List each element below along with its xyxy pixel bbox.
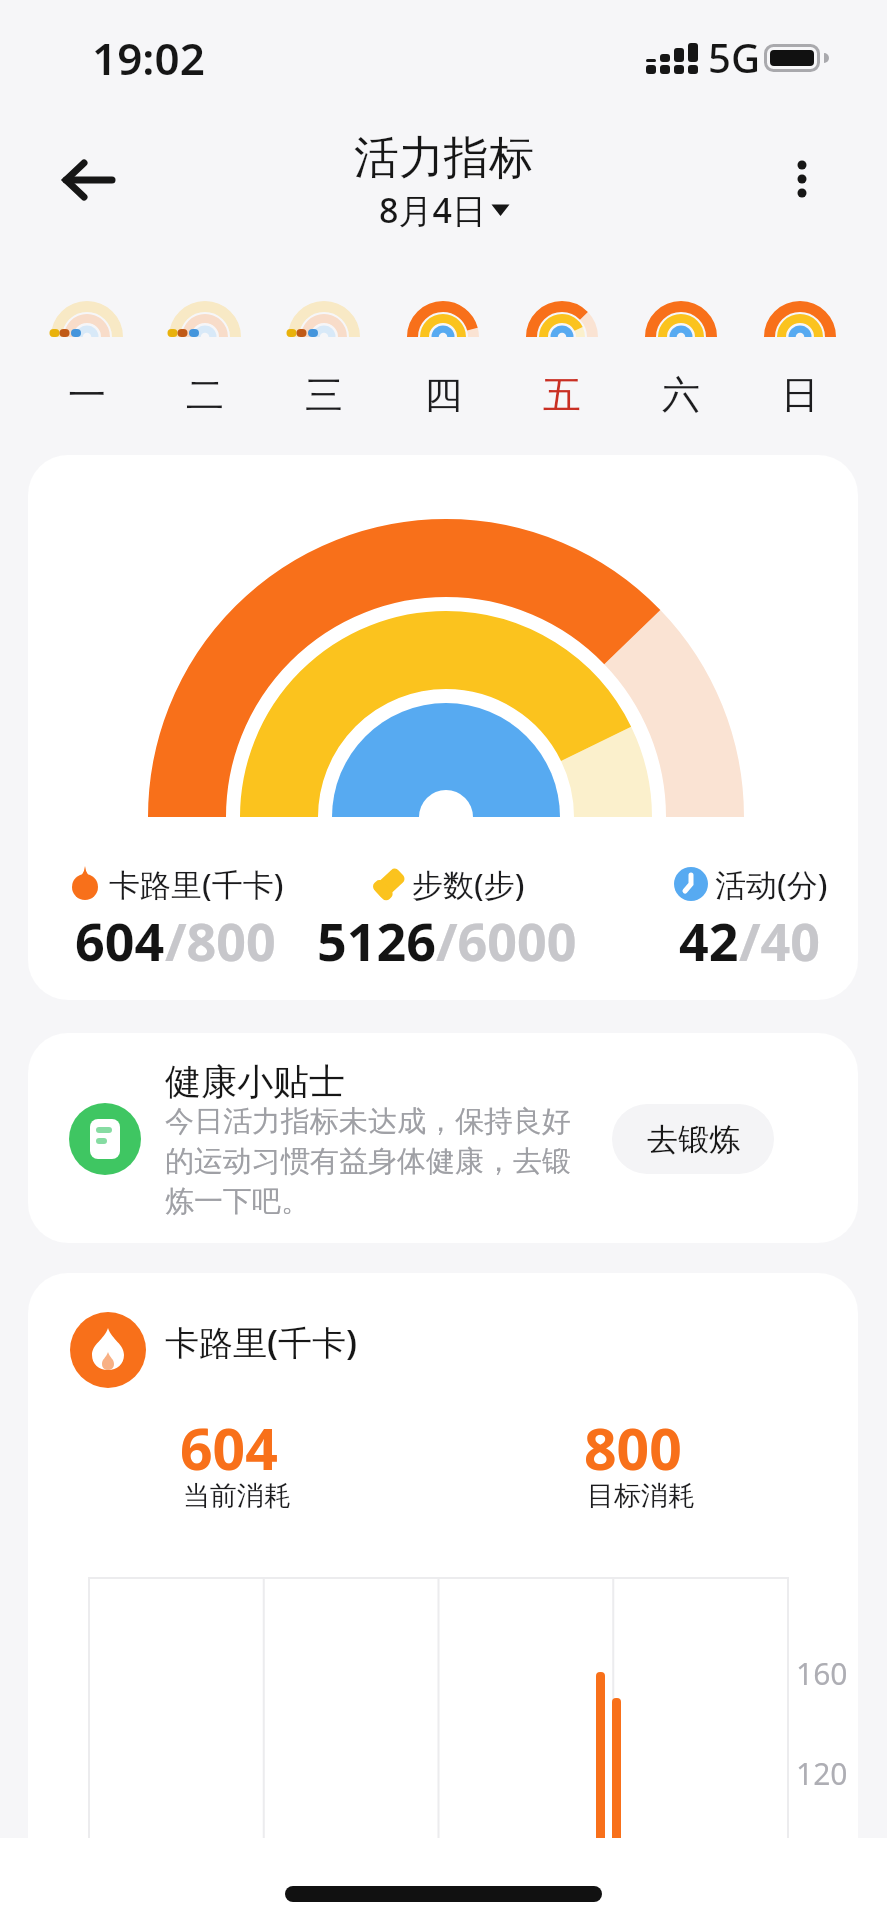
button[interactable]: 五: [502, 296, 621, 419]
button[interactable]: 二: [146, 296, 264, 419]
button[interactable]: 一: [28, 296, 146, 419]
button[interactable]: 活力指标: [354, 130, 534, 233]
staticText: 一: [68, 371, 106, 419]
staticText: 活动(分): [715, 863, 828, 905]
staticText: 活力指标: [354, 130, 534, 187]
staticText: 去锻炼: [647, 1120, 740, 1159]
staticText: 日: [781, 371, 819, 419]
staticText: 卡路里(千卡): [109, 863, 284, 905]
staticText: 604: [75, 905, 165, 976]
staticText: 六: [662, 371, 700, 419]
staticText: 五: [543, 371, 581, 419]
staticText: 604: [180, 1409, 278, 1487]
button[interactable]: 四: [383, 296, 502, 419]
button[interactable]: [50, 148, 122, 212]
staticText: 步数(步): [412, 863, 525, 905]
staticText: /40: [739, 905, 821, 976]
button[interactable]: 三: [264, 296, 383, 419]
staticText: /6000: [436, 905, 577, 976]
button[interactable]: 去锻炼: [612, 1104, 774, 1174]
staticText: 160: [796, 1653, 848, 1694]
staticText: 今日活力指标未达成，保持良好 的运动习惯有益身体健康，去锻 炼一下吧。: [165, 1103, 571, 1219]
staticText: 健康小贴士: [165, 1059, 345, 1104]
button[interactable]: [770, 146, 834, 210]
staticText: 四: [424, 371, 462, 419]
staticText: 120: [796, 1753, 848, 1794]
staticText: 卡路里(千卡): [165, 1319, 358, 1365]
staticText: 42: [679, 905, 739, 976]
button[interactable]: 日: [740, 296, 859, 419]
staticText: 8月4日: [379, 187, 486, 233]
staticText: 当前消耗: [183, 1479, 291, 1513]
staticText: 19:02: [92, 28, 205, 88]
staticText: 5126: [317, 905, 436, 976]
button[interactable]: 六: [621, 296, 740, 419]
staticText: 三: [305, 371, 343, 419]
staticText: 5G: [708, 30, 760, 84]
staticText: 800: [584, 1409, 682, 1487]
staticText: 目标消耗: [587, 1479, 695, 1513]
staticText: 二: [186, 371, 224, 419]
staticText: /800: [165, 905, 276, 976]
